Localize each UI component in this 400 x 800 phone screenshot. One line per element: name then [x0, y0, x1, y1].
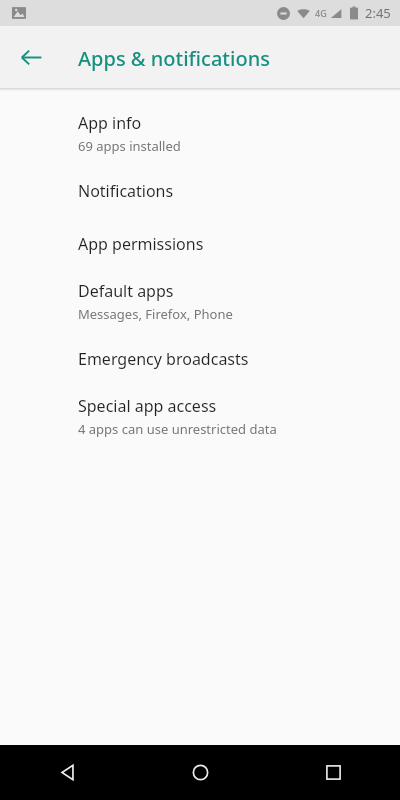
- button[interactable]: Home: [134, 745, 267, 800]
- button[interactable]: Back: [0, 745, 134, 800]
- staticText: 4G: [315, 7, 327, 19]
- button[interactable]: Notifications: [0, 164, 400, 217]
- staticText: Special app access: [78, 395, 217, 417]
- button[interactable]: App info: [0, 102, 400, 164]
- staticText: App info: [78, 112, 142, 134]
- button[interactable]: Back: [7, 33, 55, 81]
- staticText: Emergency broadcasts: [78, 348, 249, 370]
- staticText: Notifications: [78, 180, 174, 202]
- staticText: Default apps: [78, 280, 174, 302]
- button[interactable]: Default apps: [0, 270, 400, 332]
- staticText: 69 apps installed: [78, 137, 181, 155]
- staticText: Apps & notifications: [78, 45, 270, 72]
- button[interactable]: Recent apps: [267, 745, 400, 800]
- staticText: 4 apps can use unrestricted data: [78, 420, 277, 438]
- button[interactable]: Emergency broadcasts: [0, 332, 400, 385]
- button[interactable]: Special app access: [0, 385, 400, 447]
- button[interactable]: App permissions: [0, 217, 400, 270]
- staticText: App permissions: [78, 233, 204, 255]
- staticText: 2:45: [365, 4, 391, 22]
- staticText: Messages, Firefox, Phone: [78, 305, 233, 323]
